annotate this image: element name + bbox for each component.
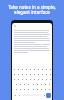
button[interactable]: Back: [13, 24, 16, 27]
button[interactable]: Key: [48, 66, 52, 72]
button[interactable]: Key: [48, 77, 52, 82]
button[interactable]: Enter: [46, 93, 51, 98]
button[interactable]: Key: [40, 66, 44, 72]
button[interactable]: Key: [28, 72, 32, 77]
button[interactable]: Key: [20, 66, 24, 72]
staticText: Take notes in a simple, elegant interfac…: [8, 4, 56, 15]
button[interactable]: Key: [47, 87, 51, 92]
button[interactable]: Key: [44, 66, 48, 72]
button[interactable]: Key: [36, 77, 40, 82]
button[interactable]: Key: [31, 87, 35, 92]
button[interactable]: Key: [44, 77, 48, 82]
button[interactable]: Key: [44, 72, 48, 77]
button[interactable]: Key: [18, 82, 22, 87]
button[interactable]: Key: [12, 72, 16, 77]
button[interactable]: Key: [39, 82, 43, 87]
button[interactable]: Key: [28, 66, 32, 72]
button[interactable]: Key: [18, 87, 22, 92]
button[interactable]: Key: [14, 82, 18, 87]
button[interactable]: Key: [20, 77, 24, 82]
button[interactable]: Key: [26, 87, 30, 92]
button[interactable]: Key: [40, 77, 44, 82]
button[interactable]: Key: [24, 72, 28, 77]
button[interactable]: Key: [40, 72, 44, 77]
button[interactable]: Key: [12, 77, 16, 82]
button[interactable]: Key: [43, 82, 47, 87]
button[interactable]: Key: [36, 72, 40, 77]
button[interactable]: Key: [47, 82, 51, 87]
button[interactable]: Key: [31, 82, 35, 87]
button[interactable]: Key: [22, 87, 26, 92]
button[interactable]: Key: [43, 87, 47, 92]
button[interactable]: Key: [16, 77, 20, 82]
button[interactable]: Key: [12, 66, 16, 72]
button[interactable]: Key: [39, 87, 43, 92]
button[interactable]: Key: [35, 82, 39, 87]
button[interactable]: Symbols: [13, 92, 17, 98]
button[interactable]: Key: [32, 77, 36, 82]
button[interactable]: [12, 28, 52, 62]
button[interactable]: Key: [48, 72, 52, 77]
button[interactable]: Key: [22, 82, 26, 87]
button[interactable]: Key: [36, 66, 40, 72]
button[interactable]: Key: [32, 66, 36, 72]
button[interactable]: Key: [16, 72, 20, 77]
button[interactable]: Key: [26, 82, 30, 87]
button[interactable]: Key: [24, 77, 28, 82]
button[interactable]: Key: [20, 72, 24, 77]
button[interactable]: Key: [35, 87, 39, 92]
button[interactable]: Key: [16, 66, 20, 72]
button[interactable]: Period: [42, 92, 46, 98]
button[interactable]: Key: [14, 87, 18, 92]
button[interactable]: Key: [32, 72, 36, 77]
button[interactable]: Key: [28, 77, 32, 82]
button[interactable]: Key: [24, 66, 28, 72]
button[interactable]: Emoji: [17, 92, 21, 98]
